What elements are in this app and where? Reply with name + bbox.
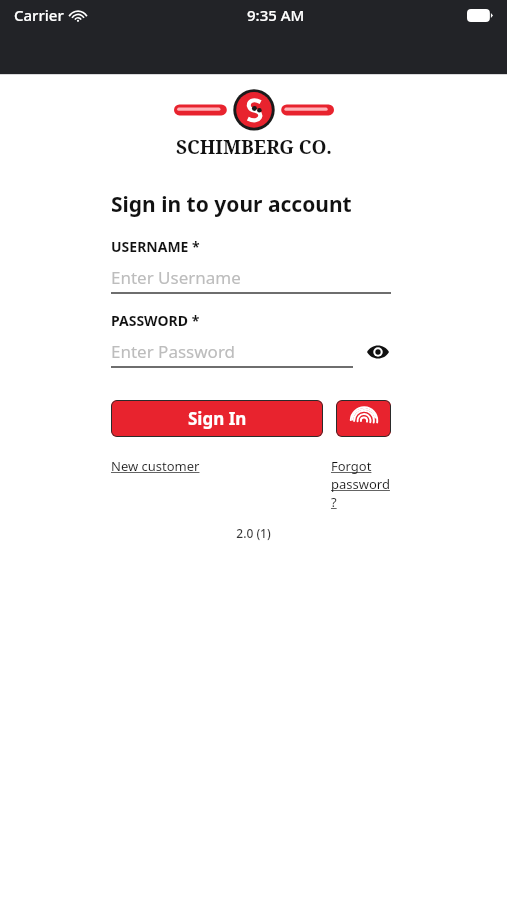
staticText: New customer [111, 457, 200, 475]
button[interactable]: Sign in with fingerprint [336, 400, 391, 437]
button[interactable]: Show password [365, 339, 391, 365]
button[interactable]: Enter Username [111, 262, 391, 292]
staticText: Forgot password? [331, 457, 391, 511]
button[interactable]: Enter Password [111, 336, 353, 366]
staticText: 2.0 (1) [0, 525, 507, 541]
staticText: SCHIMBERG CO. [176, 134, 332, 160]
staticText: PASSWORD * [111, 311, 200, 330]
staticText: 9:35 AM [247, 5, 305, 25]
staticText: Enter Password [111, 340, 236, 363]
staticText: USERNAME * [111, 237, 200, 256]
staticText: Sign in to your account [111, 190, 352, 219]
button[interactable]: Sign In [111, 400, 323, 437]
staticText: Sign In [188, 407, 247, 430]
button[interactable]: New customer [111, 457, 200, 475]
button[interactable]: Forgot password? [331, 457, 391, 511]
staticText: Enter Username [111, 266, 241, 289]
staticText: Carrier [14, 5, 64, 25]
